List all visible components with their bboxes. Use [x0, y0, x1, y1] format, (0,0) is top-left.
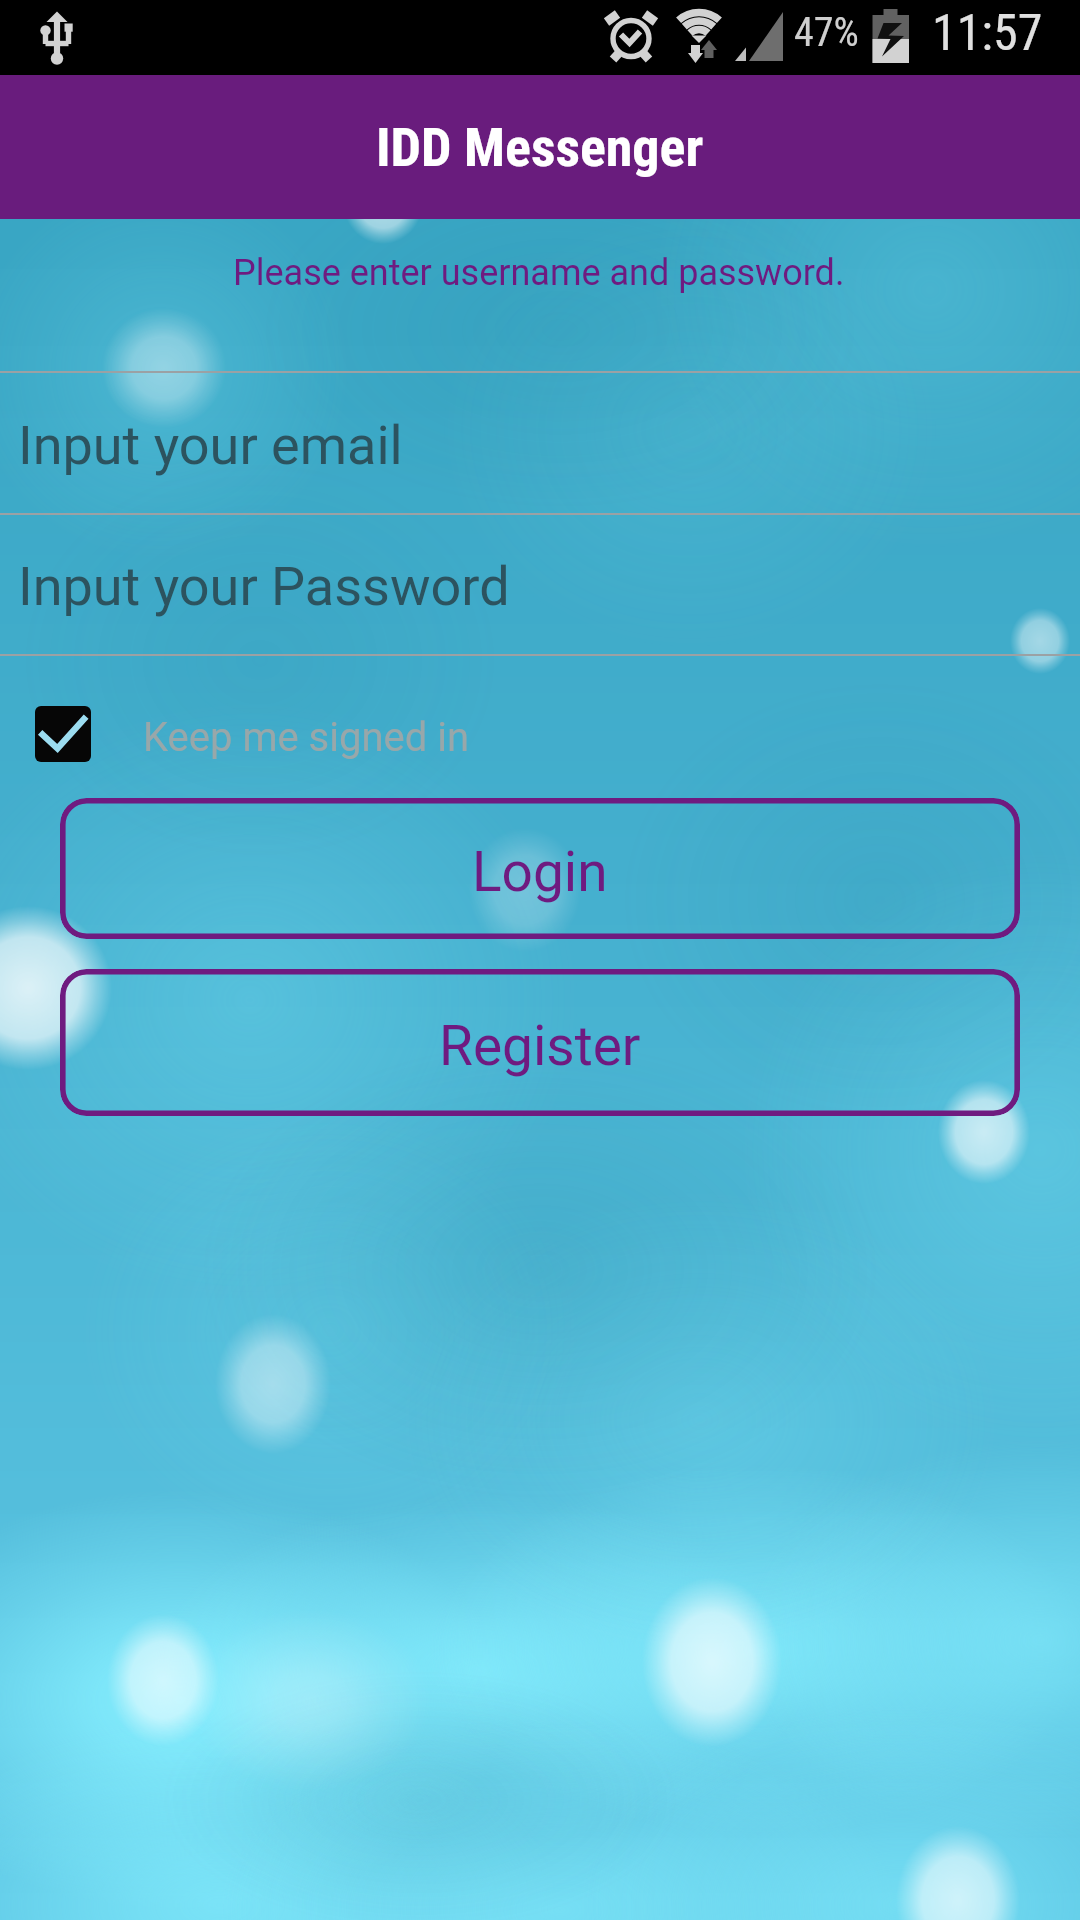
button[interactable]: Input your Password [0, 515, 1080, 654]
staticText: Login [472, 840, 608, 904]
button[interactable]: Register [60, 969, 1020, 1116]
staticText: Register [439, 1014, 641, 1078]
button[interactable]: Login [60, 798, 1020, 939]
staticText: 11:57 [932, 4, 1043, 63]
staticText: Keep me signed in [143, 714, 470, 761]
button[interactable]: Input your email [0, 373, 1080, 513]
staticText: 47% [794, 9, 859, 56]
staticText: IDD Messenger [376, 116, 704, 179]
staticText: Please enter username and password. [233, 252, 845, 294]
staticText: Input your email [18, 414, 403, 477]
staticText: Input your Password [18, 555, 510, 618]
button[interactable]: Keep me signed in checkbox, checked [35, 706, 91, 762]
button[interactable]: Keep me signed in checkbox, checked [0, 698, 1080, 770]
